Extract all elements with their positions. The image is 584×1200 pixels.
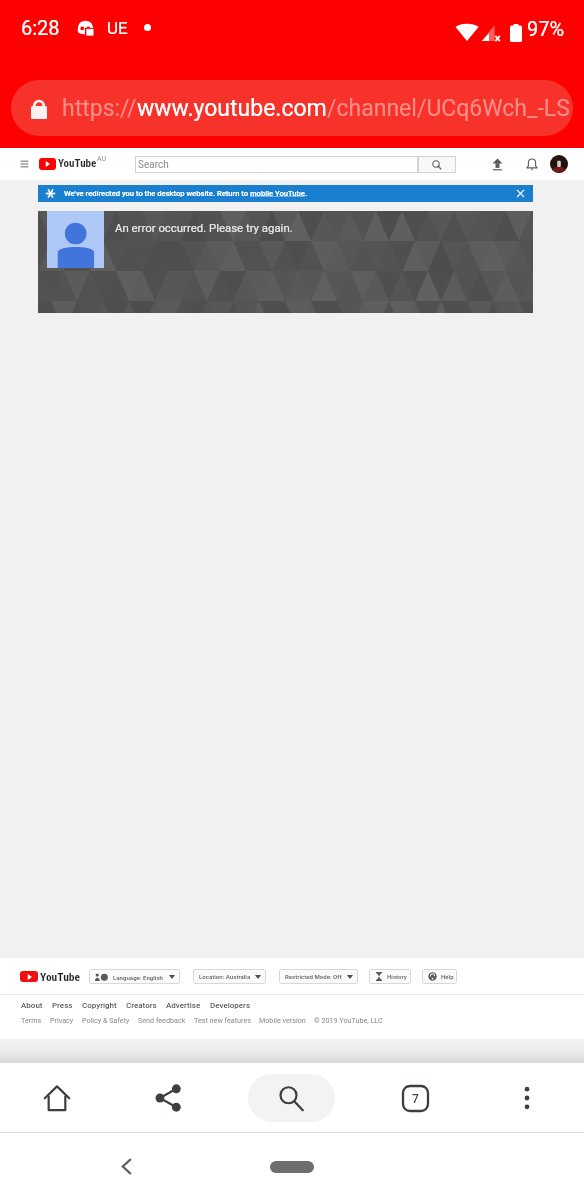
- button[interactable]: Share: [140, 1070, 196, 1126]
- staticText: An error occurred. Please try again.: [115, 221, 293, 234]
- staticText: .: [305, 189, 308, 198]
- staticText: AU: [97, 155, 107, 163]
- staticText: YouTube: [40, 970, 81, 983]
- button[interactable]: Help: [422, 969, 457, 984]
- button[interactable]: About: [21, 1001, 52, 1010]
- button[interactable]: Dismiss: [514, 187, 527, 200]
- other: Back: [118, 1158, 135, 1175]
- button[interactable]: YouTube: [20, 970, 81, 983]
- staticText: History: [387, 973, 407, 980]
- button[interactable]: Language: English: [89, 969, 180, 984]
- button[interactable]: Site information: [11, 80, 573, 136]
- button[interactable]: History: [369, 969, 411, 984]
- button[interactable]: More options: [499, 1070, 555, 1126]
- button[interactable]: Send feedback: [138, 1016, 194, 1024]
- button[interactable]: Mobile version: [259, 1016, 314, 1024]
- button[interactable]: Terms: [21, 1016, 50, 1024]
- staticText: www.youtube.com: [137, 95, 327, 122]
- staticText: Help: [441, 973, 454, 980]
- staticText: UE: [107, 18, 128, 38]
- button[interactable]: Creators: [126, 1001, 166, 1010]
- button[interactable]: Search: [248, 1074, 335, 1122]
- staticText: 97%: [527, 17, 565, 40]
- button[interactable]: Search: [418, 156, 456, 173]
- button[interactable]: Tabs: [387, 1070, 443, 1126]
- button[interactable]: Home: [29, 1070, 85, 1126]
- staticText: https://: [62, 95, 137, 122]
- button[interactable]: YouTube: [39, 157, 107, 170]
- button[interactable]: Copyright: [82, 1001, 126, 1010]
- button[interactable]: Guide: [14, 154, 34, 174]
- button[interactable]: Notifications: [521, 153, 543, 175]
- button[interactable]: Account: [550, 155, 568, 173]
- button[interactable]: Test new features: [194, 1016, 259, 1024]
- staticText: /channel/UCq6Wch_-LS: [327, 95, 570, 122]
- staticText: Language: English: [113, 974, 163, 981]
- button[interactable]: Search: [135, 156, 418, 173]
- staticText: We've redirected you to the desktop webs…: [64, 189, 250, 198]
- button[interactable]: Policy & Safety: [82, 1016, 138, 1024]
- button[interactable]: Advertise: [166, 1001, 210, 1010]
- staticText: 6:28: [21, 16, 60, 39]
- other: Site information: [31, 99, 47, 119]
- staticText: © 2019 YouTube, LLC: [314, 1016, 383, 1024]
- button[interactable]: Developers: [210, 1001, 260, 1010]
- button[interactable]: Press: [52, 1001, 82, 1010]
- button[interactable]: Privacy: [50, 1016, 82, 1024]
- button[interactable]: Upload video: [486, 153, 508, 175]
- button[interactable]: Location: Australia: [193, 969, 266, 984]
- staticText: 7: [412, 1092, 419, 1106]
- staticText: Location: Australia: [199, 973, 251, 980]
- button[interactable]: mobile YouTube: [250, 189, 305, 198]
- staticText: YouTube: [58, 157, 97, 170]
- staticText: Search: [138, 159, 169, 171]
- button[interactable]: Restricted Mode: Off: [279, 969, 358, 984]
- staticText: Restricted Mode: Off: [285, 973, 342, 980]
